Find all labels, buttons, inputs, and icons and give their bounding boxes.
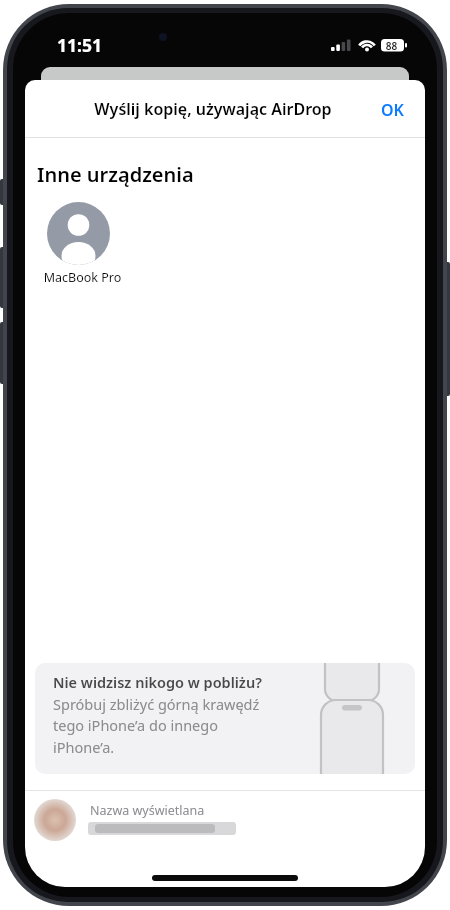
staticText: 11:51	[57, 33, 102, 57]
staticText: Wyślij kopię, używając AirDrop	[25, 98, 413, 120]
staticText: Nazwa wyświetlana	[90, 802, 205, 819]
button[interactable]	[47, 202, 110, 265]
staticText: MacBook Pro	[32, 269, 133, 287]
staticText: Spróbuj zbliżyć górną krawędź tego iPhon…	[53, 694, 260, 758]
staticText: Nie widzisz nikogo w pobliżu?	[53, 672, 262, 692]
staticText: Inne urządzenia	[37, 161, 194, 188]
staticText: 88	[384, 39, 399, 53]
staticText: OK	[381, 99, 404, 121]
button[interactable]: OK	[368, 96, 416, 124]
